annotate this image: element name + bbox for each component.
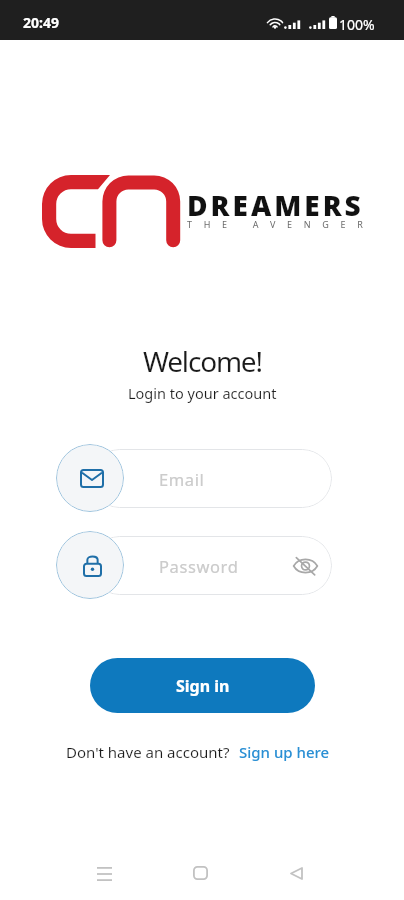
staticText: Password [159,555,239,577]
button[interactable]: Show password [290,551,320,581]
button[interactable]: Back [272,849,320,897]
staticText: THE AVENGER [187,218,375,230]
staticText: DREAMERS [187,186,364,224]
button[interactable]: Email [56,444,124,512]
staticText: Don't have an account? [66,742,230,762]
button[interactable]: Sign up here [239,742,330,762]
staticText: Sign up here [239,742,330,762]
staticText: Welcome! [143,342,262,380]
staticText: Email [159,468,205,490]
button[interactable]: Password [90,536,332,595]
button[interactable]: Home [176,849,224,897]
staticText: Login to your account [128,383,277,403]
button[interactable]: Sign in [90,658,315,713]
staticText: 100% [339,15,375,34]
button[interactable]: Recent apps [80,849,128,897]
button[interactable]: Email [90,449,332,508]
button[interactable]: Password [56,531,124,599]
staticText: 20:49 [23,13,59,32]
staticText: Sign in [176,675,230,697]
